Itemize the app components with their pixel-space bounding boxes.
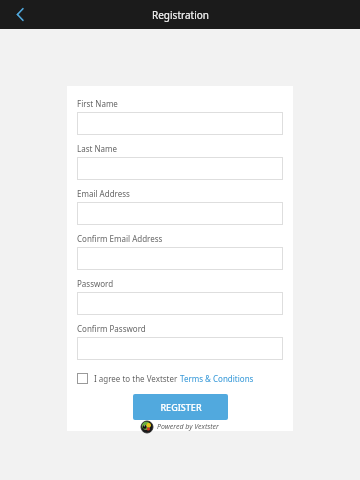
staticText: Password <box>77 278 114 289</box>
staticText: REGISTER <box>160 401 202 413</box>
staticText: Powered by Vextster <box>157 422 219 432</box>
button[interactable]: Back <box>0 0 40 29</box>
staticText: Confirm Password <box>77 323 146 334</box>
button[interactable]: Confirm Email Address <box>77 247 283 270</box>
staticText: Registration <box>152 8 209 22</box>
staticText: I agree to the Vextster <box>94 373 180 384</box>
button[interactable]: I agree to the Vextster <box>77 373 283 384</box>
button[interactable]: First Name <box>77 112 283 135</box>
button[interactable]: Password <box>77 292 283 315</box>
button[interactable]: Terms & Conditions <box>180 373 254 384</box>
staticText: Email Address <box>77 188 130 199</box>
staticText: First Name <box>77 98 118 109</box>
button[interactable]: Email Address <box>77 202 283 225</box>
staticText: Last Name <box>77 143 118 154</box>
button[interactable]: REGISTER <box>133 394 228 420</box>
button[interactable]: Last Name <box>77 157 283 180</box>
button[interactable]: Confirm Password <box>77 337 283 360</box>
staticText: Confirm Email Address <box>77 233 163 244</box>
